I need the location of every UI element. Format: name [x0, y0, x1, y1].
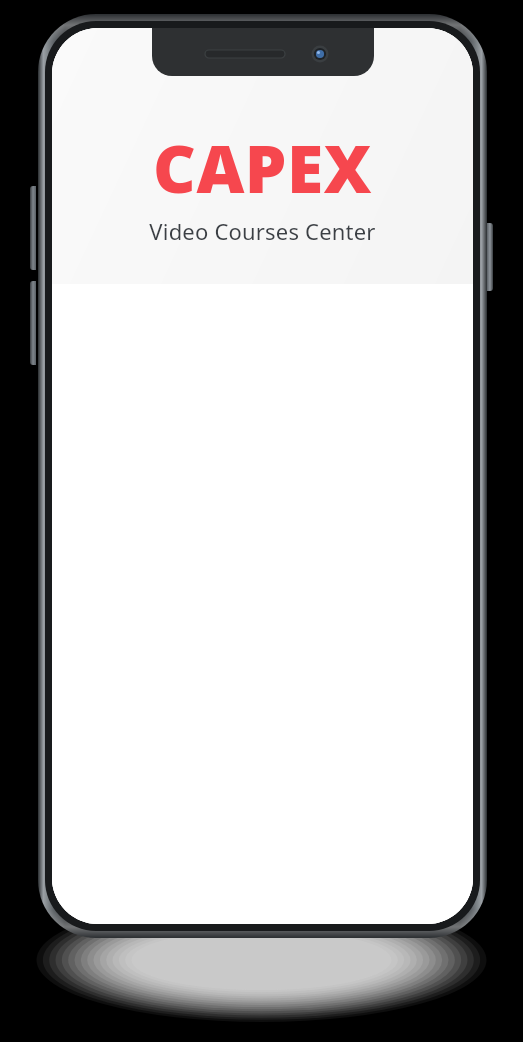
button[interactable]: Power button — [487, 223, 493, 291]
button[interactable]: CAPEX — [52, 28, 473, 284]
staticText: Video Courses Center — [149, 216, 376, 246]
button[interactable]: Volume button — [30, 281, 36, 365]
staticText: CAPEX — [153, 122, 372, 212]
button[interactable]: Volume button — [30, 186, 36, 270]
